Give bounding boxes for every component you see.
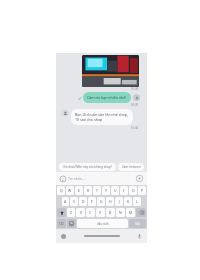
staticText: Cảm ơn bạn nhiều nhé! (87, 95, 127, 100)
staticText: A (64, 199, 67, 204)
staticText: 10:38 (131, 87, 139, 91)
button[interactable]: Bạn đi chuẩn size lên nhé shop, 10 sao c… (71, 109, 133, 125)
button[interactable]: Emoji keyboard (67, 219, 76, 228)
button[interactable]: Voice input (136, 233, 143, 240)
staticText: K (127, 199, 130, 204)
button[interactable]: Cảm ơn bạn n (118, 163, 144, 171)
staticText: G (100, 199, 103, 204)
button[interactable]: Gửi (129, 219, 146, 228)
staticText: B (109, 210, 112, 215)
button[interactable]: Xin chào! Món này còn không shop? (59, 163, 116, 171)
staticText: T (96, 188, 98, 193)
button[interactable]: N (116, 208, 125, 217)
button[interactable]: H (106, 197, 114, 206)
button[interactable]: Contact avatar (61, 109, 69, 117)
button[interactable]: G (97, 197, 105, 206)
button[interactable]: Photo message (82, 55, 139, 87)
staticText: U (114, 188, 117, 193)
button[interactable]: L (133, 197, 141, 206)
staticText: 123 (59, 222, 64, 226)
staticText: C (89, 210, 92, 215)
button[interactable]: B (106, 208, 115, 217)
button[interactable]: R (84, 186, 92, 195)
button[interactable]: V (96, 208, 105, 217)
button[interactable]: J (115, 197, 123, 206)
staticText: J (119, 199, 120, 204)
button[interactable]: Q (57, 186, 65, 195)
staticText: X (80, 210, 82, 215)
button[interactable]: A (62, 197, 69, 206)
staticText: E (78, 188, 80, 193)
staticText: Q (60, 188, 63, 193)
button[interactable]: O (129, 186, 137, 195)
button[interactable]: U (111, 186, 119, 195)
staticText: Y (105, 188, 107, 193)
button[interactable]: dấu cách (77, 219, 128, 228)
button[interactable]: P (138, 186, 146, 195)
staticText: L (136, 199, 138, 204)
button[interactable]: Cảm ơn bạn nhiều nhé! (83, 92, 131, 103)
staticText: 10:44 (131, 126, 139, 130)
button[interactable]: Z (67, 208, 75, 217)
staticText: I (123, 188, 125, 193)
staticText: dấu cách (97, 222, 109, 226)
staticText: 10:39 (131, 103, 139, 107)
button[interactable]: Home (84, 235, 120, 237)
button[interactable]: Emoji (59, 175, 67, 183)
staticText: P (141, 188, 144, 193)
button[interactable]: Shift (57, 208, 66, 217)
staticText: O (132, 188, 135, 193)
staticText: N (119, 210, 122, 215)
staticText: V (99, 210, 102, 215)
button[interactable]: More options (135, 174, 144, 183)
button[interactable]: C (86, 208, 95, 217)
staticText: W (68, 188, 72, 193)
staticText: Gửi (135, 222, 140, 226)
button[interactable]: K (124, 197, 132, 206)
button[interactable]: T (93, 186, 101, 195)
button[interactable]: Tin nhắn... (68, 174, 135, 183)
button[interactable]: D (79, 197, 87, 206)
staticText: Xin chào! Món này còn không shop? (63, 165, 112, 169)
button[interactable]: E (75, 186, 83, 195)
button[interactable]: Y (102, 186, 110, 195)
staticText: D (82, 199, 85, 204)
staticText: F (91, 199, 93, 204)
staticText: Cảm ơn bạn n (122, 165, 141, 169)
button[interactable]: S (70, 197, 78, 206)
button[interactable]: X (76, 208, 85, 217)
button[interactable]: I (120, 186, 128, 195)
button[interactable]: Seen by (133, 94, 140, 101)
button[interactable]: W (66, 186, 74, 195)
staticText: R (87, 188, 90, 193)
staticText: S (73, 199, 75, 204)
staticText: Bạn đi chuẩn size lên nhé shop, 10 sao c… (75, 112, 129, 122)
button[interactable]: Recents (60, 233, 67, 240)
button[interactable]: Numbers (57, 219, 66, 228)
staticText: Tin nhắn... (68, 176, 85, 181)
staticText: M (129, 210, 133, 215)
staticText: H (109, 199, 112, 204)
button[interactable]: F (88, 197, 96, 206)
staticText: Z (70, 210, 72, 215)
button[interactable]: Backspace (136, 208, 146, 217)
button[interactable]: M (126, 208, 135, 217)
